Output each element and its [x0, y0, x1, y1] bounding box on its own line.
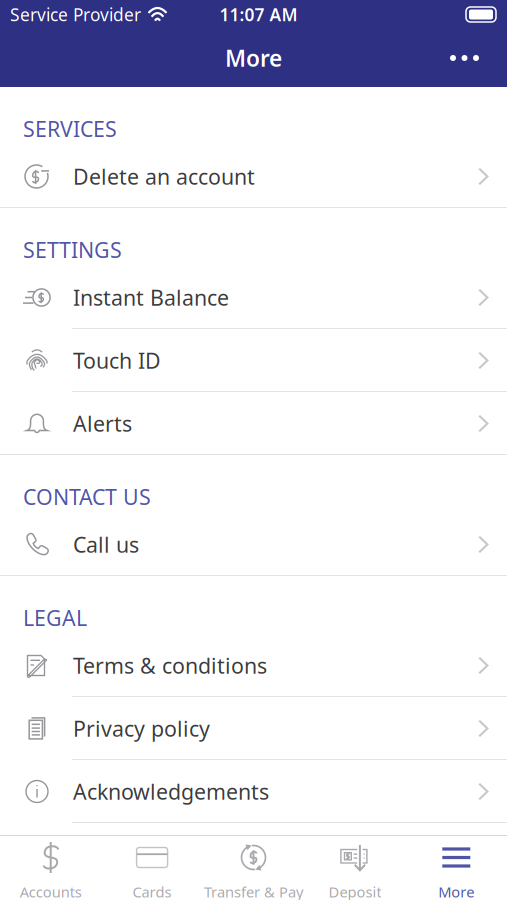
staticText: Instant Balance — [73, 283, 229, 312]
staticText: Accounts — [20, 882, 82, 900]
staticText: Acknowledgements — [73, 777, 269, 806]
staticText: Deposit — [328, 882, 381, 900]
button[interactable]: Accounts — [0, 835, 101, 900]
button[interactable]: Touch ID — [0, 329, 507, 392]
button[interactable]: Terms & conditions — [0, 634, 507, 697]
button[interactable]: More — [406, 835, 507, 900]
button[interactable]: Delete an account — [0, 145, 507, 208]
staticText: Service Provider — [10, 3, 141, 26]
staticText: Delete an account — [73, 162, 255, 191]
staticText: Terms & conditions — [73, 651, 267, 680]
staticText: More — [225, 43, 282, 73]
button[interactable]: Deposit — [304, 835, 406, 900]
staticText: SETTINGS — [23, 236, 122, 264]
staticText: 11:07 AM — [219, 3, 297, 26]
button[interactable]: Call us — [0, 513, 507, 576]
button[interactable]: Cards — [101, 835, 203, 900]
staticText: Transfer & Pay — [204, 882, 303, 900]
staticText: CONTACT US — [23, 483, 151, 511]
button[interactable]: More options — [422, 35, 507, 81]
button[interactable]: Alerts — [0, 392, 507, 455]
staticText: Privacy policy — [73, 714, 210, 743]
button[interactable]: Privacy policy — [0, 697, 507, 760]
staticText: LEGAL — [23, 604, 87, 632]
button[interactable]: Acknowledgements — [0, 760, 507, 823]
staticText: More — [438, 882, 474, 900]
staticText: Call us — [73, 530, 139, 559]
button[interactable]: Transfer & Pay — [203, 835, 304, 900]
staticText: Touch ID — [73, 346, 161, 375]
staticText: SERVICES — [23, 115, 117, 143]
staticText: Cards — [133, 882, 172, 900]
button[interactable]: Instant Balance — [0, 266, 507, 329]
staticText: Alerts — [73, 409, 132, 438]
